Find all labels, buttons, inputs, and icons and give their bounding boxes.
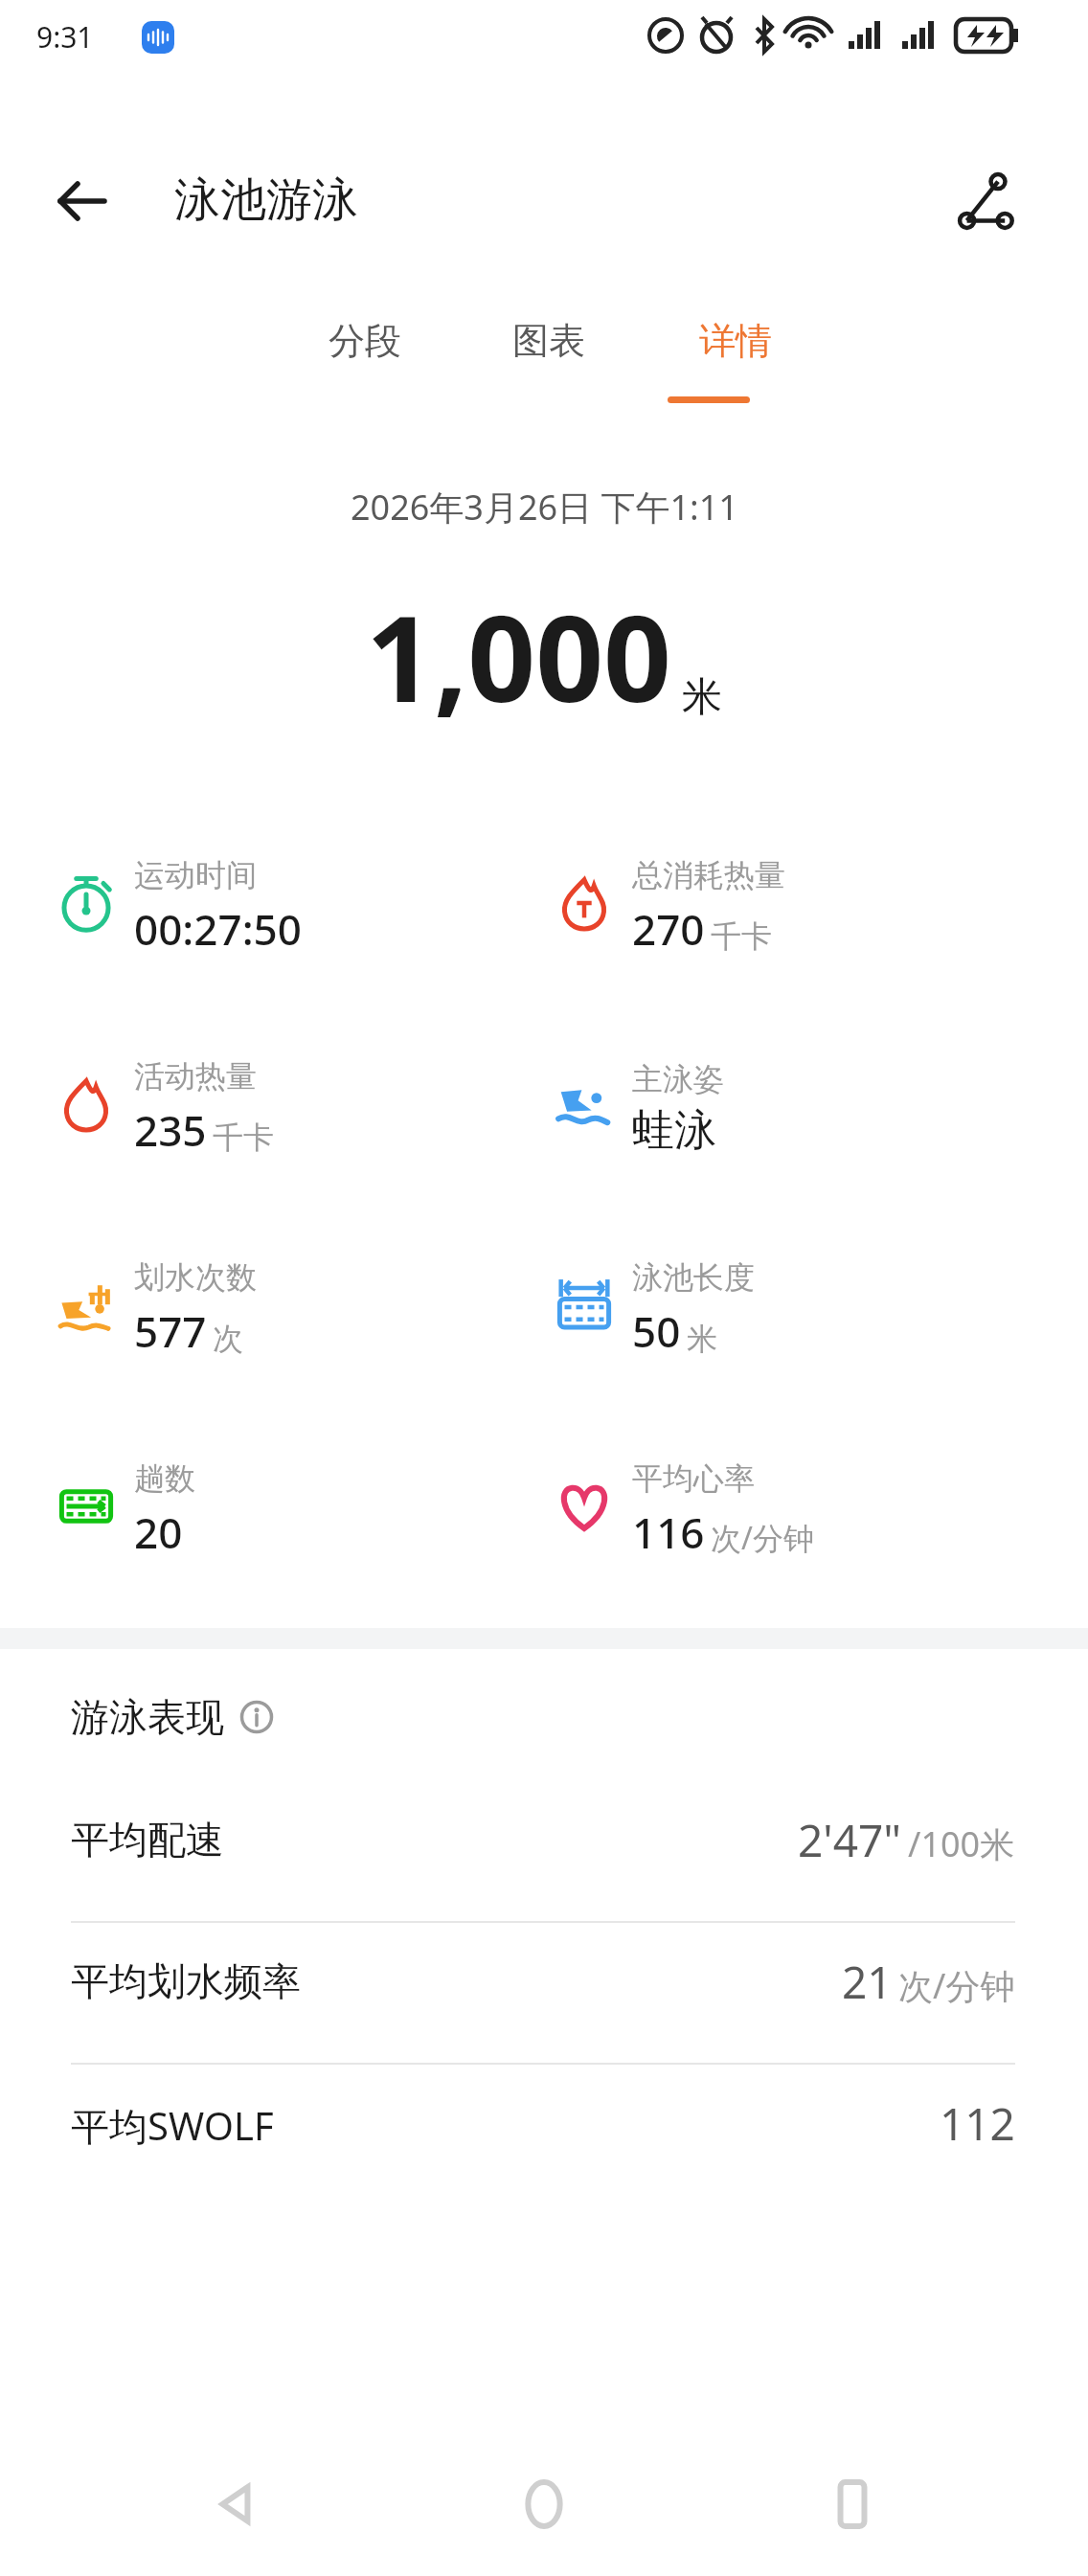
staticText: 活动热量 [134,1057,257,1096]
button[interactable]: 平均划水频率 [0,1923,1088,2065]
staticText: 2026年3月26日 下午1:11 [351,484,738,531]
staticText: 次/分钟 [898,1962,1015,2009]
staticText: 116 [632,1503,705,1561]
staticText: 235 [134,1101,207,1159]
staticText: 平均配速 [71,1816,224,1864]
button[interactable]: Back [165,2432,308,2576]
button[interactable]: Share [934,148,1039,254]
staticText: 蛙泳 [632,1104,716,1157]
staticText: 千卡 [213,1119,274,1157]
staticText: 平均划水频率 [71,1957,301,2005]
staticText: 运动时间 [134,856,257,894]
button[interactable]: 分段 [273,318,457,421]
staticText: 112 [940,2093,1015,2154]
button[interactable]: 游泳表现 [71,1693,274,1741]
button[interactable]: Home [472,2432,616,2576]
button[interactable]: 主泳姿 [536,1032,1015,1176]
staticText: 20 [134,1503,183,1561]
staticText: 270 [632,900,705,958]
staticText: 趟数 [134,1459,195,1498]
staticText: 次/分钟 [711,1517,814,1559]
staticText: 577 [134,1302,207,1360]
staticText: 1,000 [366,575,672,736]
staticText: 21 [842,1952,893,2012]
staticText: 划水次数 [134,1258,257,1297]
button[interactable]: 总消耗热量 [536,831,1015,975]
button[interactable]: 图表 [457,318,641,421]
other: Info [239,1700,274,1734]
staticText: 游泳表现 [71,1693,224,1741]
staticText: 图表 [512,318,585,364]
staticText: 平均心率 [632,1459,755,1498]
button[interactable]: 平均SWOLF [0,2065,1088,2206]
staticText: 详情 [699,318,772,364]
button[interactable]: 活动热量 [38,1032,517,1176]
button[interactable]: 泳池长度 [536,1233,1015,1377]
staticText: 泳池游泳 [174,171,358,229]
staticText: 分段 [329,318,401,364]
staticText: 泳池长度 [632,1258,755,1297]
staticText: 9:31 [36,17,94,56]
button[interactable]: Recents [781,2432,924,2576]
staticText: 米 [682,672,722,723]
staticText: 50 [632,1302,681,1360]
staticText: 千卡 [711,917,772,956]
button[interactable]: 运动时间 [38,831,517,975]
staticText: 总消耗热量 [632,856,785,894]
staticText: 2'47" [798,1810,902,1870]
button[interactable]: 趟数 [38,1435,517,1578]
button[interactable]: 详情 [644,318,827,421]
button[interactable]: 平均配速 [0,1781,1088,1923]
button[interactable]: 平均心率 [536,1435,1015,1578]
staticText: 米 [687,1320,717,1358]
staticText: 平均SWOLF [71,2099,274,2152]
button[interactable]: Back [29,148,134,254]
staticText: /100米 [908,1820,1015,1867]
button[interactable]: 划水次数 [38,1233,517,1377]
staticText: 次 [213,1320,243,1358]
staticText: 00:27:50 [134,900,302,958]
staticText: 主泳姿 [632,1060,724,1098]
